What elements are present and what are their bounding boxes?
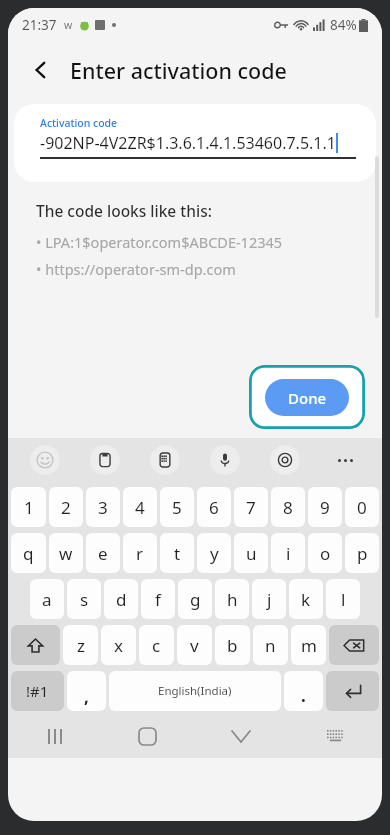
staticText: g <box>190 588 201 611</box>
button[interactable]: x <box>101 625 136 665</box>
button[interactable]: j <box>252 579 286 619</box>
button[interactable]: . <box>284 671 323 711</box>
button[interactable]: f <box>141 579 175 619</box>
staticText: o <box>320 542 331 565</box>
button[interactable]: b <box>215 625 250 665</box>
staticText: q <box>23 542 34 565</box>
button[interactable]: u <box>234 533 268 573</box>
staticText: l <box>341 588 346 611</box>
staticText: u <box>246 542 257 565</box>
staticText: w <box>64 18 73 32</box>
button[interactable]: 9 <box>308 487 342 527</box>
button[interactable]: 4 <box>123 487 157 527</box>
button[interactable]: c <box>139 625 174 665</box>
button[interactable]: n <box>253 625 288 665</box>
staticText: m <box>301 634 317 657</box>
staticText: Enter activation code <box>70 56 287 85</box>
button[interactable]: w <box>49 533 83 573</box>
staticText: j <box>267 588 272 611</box>
staticText: n <box>265 634 276 657</box>
staticText: y <box>210 542 219 565</box>
staticText: 2 <box>61 496 71 519</box>
button[interactable]: Enter <box>326 671 379 711</box>
button[interactable]: v <box>177 625 212 665</box>
button[interactable]: 1 <box>11 487 46 527</box>
button[interactable]: 5 <box>160 487 194 527</box>
button[interactable]: !#1 <box>11 671 64 711</box>
staticText: The code looks like this: <box>36 200 212 221</box>
staticText: w <box>59 542 73 565</box>
button[interactable]: s <box>67 579 101 619</box>
button[interactable]: Done <box>249 365 365 429</box>
button[interactable]: d <box>104 579 138 619</box>
button[interactable]: , <box>67 671 106 711</box>
button[interactable]: English(India) <box>109 671 281 711</box>
button[interactable]: Backspace <box>329 625 379 665</box>
button[interactable]: y <box>197 533 231 573</box>
staticText: • LPA:1$operator.com$ABCDE-12345 <box>36 232 283 252</box>
button[interactable]: l <box>326 579 360 619</box>
staticText: 0 <box>357 496 367 519</box>
button[interactable]: q <box>11 533 46 573</box>
staticText: i <box>286 542 291 565</box>
staticText: Done <box>288 388 327 408</box>
button[interactable]: Shift <box>11 625 60 665</box>
button[interactable]: i <box>271 533 305 573</box>
button[interactable]: g <box>178 579 212 619</box>
button[interactable]: m <box>291 625 326 665</box>
staticText: z <box>77 634 85 657</box>
staticText: 84% <box>330 16 357 34</box>
staticText: 6 <box>209 496 219 519</box>
staticText: t <box>174 542 181 565</box>
button[interactable]: Clipboard <box>90 445 120 475</box>
button[interactable]: More options <box>330 445 360 475</box>
button[interactable]: r <box>123 533 157 573</box>
button[interactable]: a <box>30 579 64 619</box>
button[interactable]: 2 <box>49 487 83 527</box>
button[interactable]: k <box>289 579 323 619</box>
button[interactable]: Home <box>101 714 194 758</box>
button[interactable]: o <box>308 533 342 573</box>
staticText: !#1 <box>26 681 49 701</box>
staticText: 9 <box>320 496 330 519</box>
staticText: e <box>98 542 108 565</box>
button[interactable]: 0 <box>345 487 379 527</box>
button[interactable]: Voice input <box>210 445 240 475</box>
staticText: , <box>84 685 89 708</box>
staticText: 21:37 <box>22 16 57 34</box>
staticText: 8 <box>283 496 293 519</box>
staticText: p <box>357 542 368 565</box>
button[interactable]: Emoji <box>30 445 60 475</box>
button[interactable]: 6 <box>197 487 231 527</box>
staticText: d <box>116 588 127 611</box>
button[interactable]: 3 <box>86 487 120 527</box>
button[interactable]: Text extraction <box>150 445 180 475</box>
button[interactable]: z <box>63 625 98 665</box>
staticText: x <box>114 634 123 657</box>
button[interactable]: Activation code <box>14 104 376 182</box>
button[interactable]: Recent apps <box>8 714 101 758</box>
button[interactable]: p <box>345 533 379 573</box>
button[interactable]: t <box>160 533 194 573</box>
staticText: -902NP-4V2ZR$1.3.6.1.4.1.53460.7.5.1.1 <box>40 132 336 154</box>
staticText: . <box>301 684 306 707</box>
staticText: r <box>136 542 144 565</box>
staticText: • https://operator-sm-dp.com <box>36 259 236 279</box>
staticText: h <box>227 588 238 611</box>
staticText: f <box>155 588 161 611</box>
button[interactable]: 8 <box>271 487 305 527</box>
button[interactable]: Back <box>24 53 58 87</box>
button[interactable]: 7 <box>234 487 268 527</box>
staticText: a <box>42 588 52 611</box>
staticText: 1 <box>24 496 34 519</box>
staticText: k <box>301 588 311 611</box>
staticText: 7 <box>246 496 256 519</box>
staticText: s <box>80 588 89 611</box>
button[interactable]: Change keyboard <box>288 714 382 758</box>
button[interactable]: Settings <box>270 445 300 475</box>
staticText: 5 <box>172 496 182 519</box>
button[interactable]: Hide keyboard <box>194 714 288 758</box>
button[interactable]: h <box>215 579 249 619</box>
button[interactable]: e <box>86 533 120 573</box>
staticText: 3 <box>98 496 108 519</box>
